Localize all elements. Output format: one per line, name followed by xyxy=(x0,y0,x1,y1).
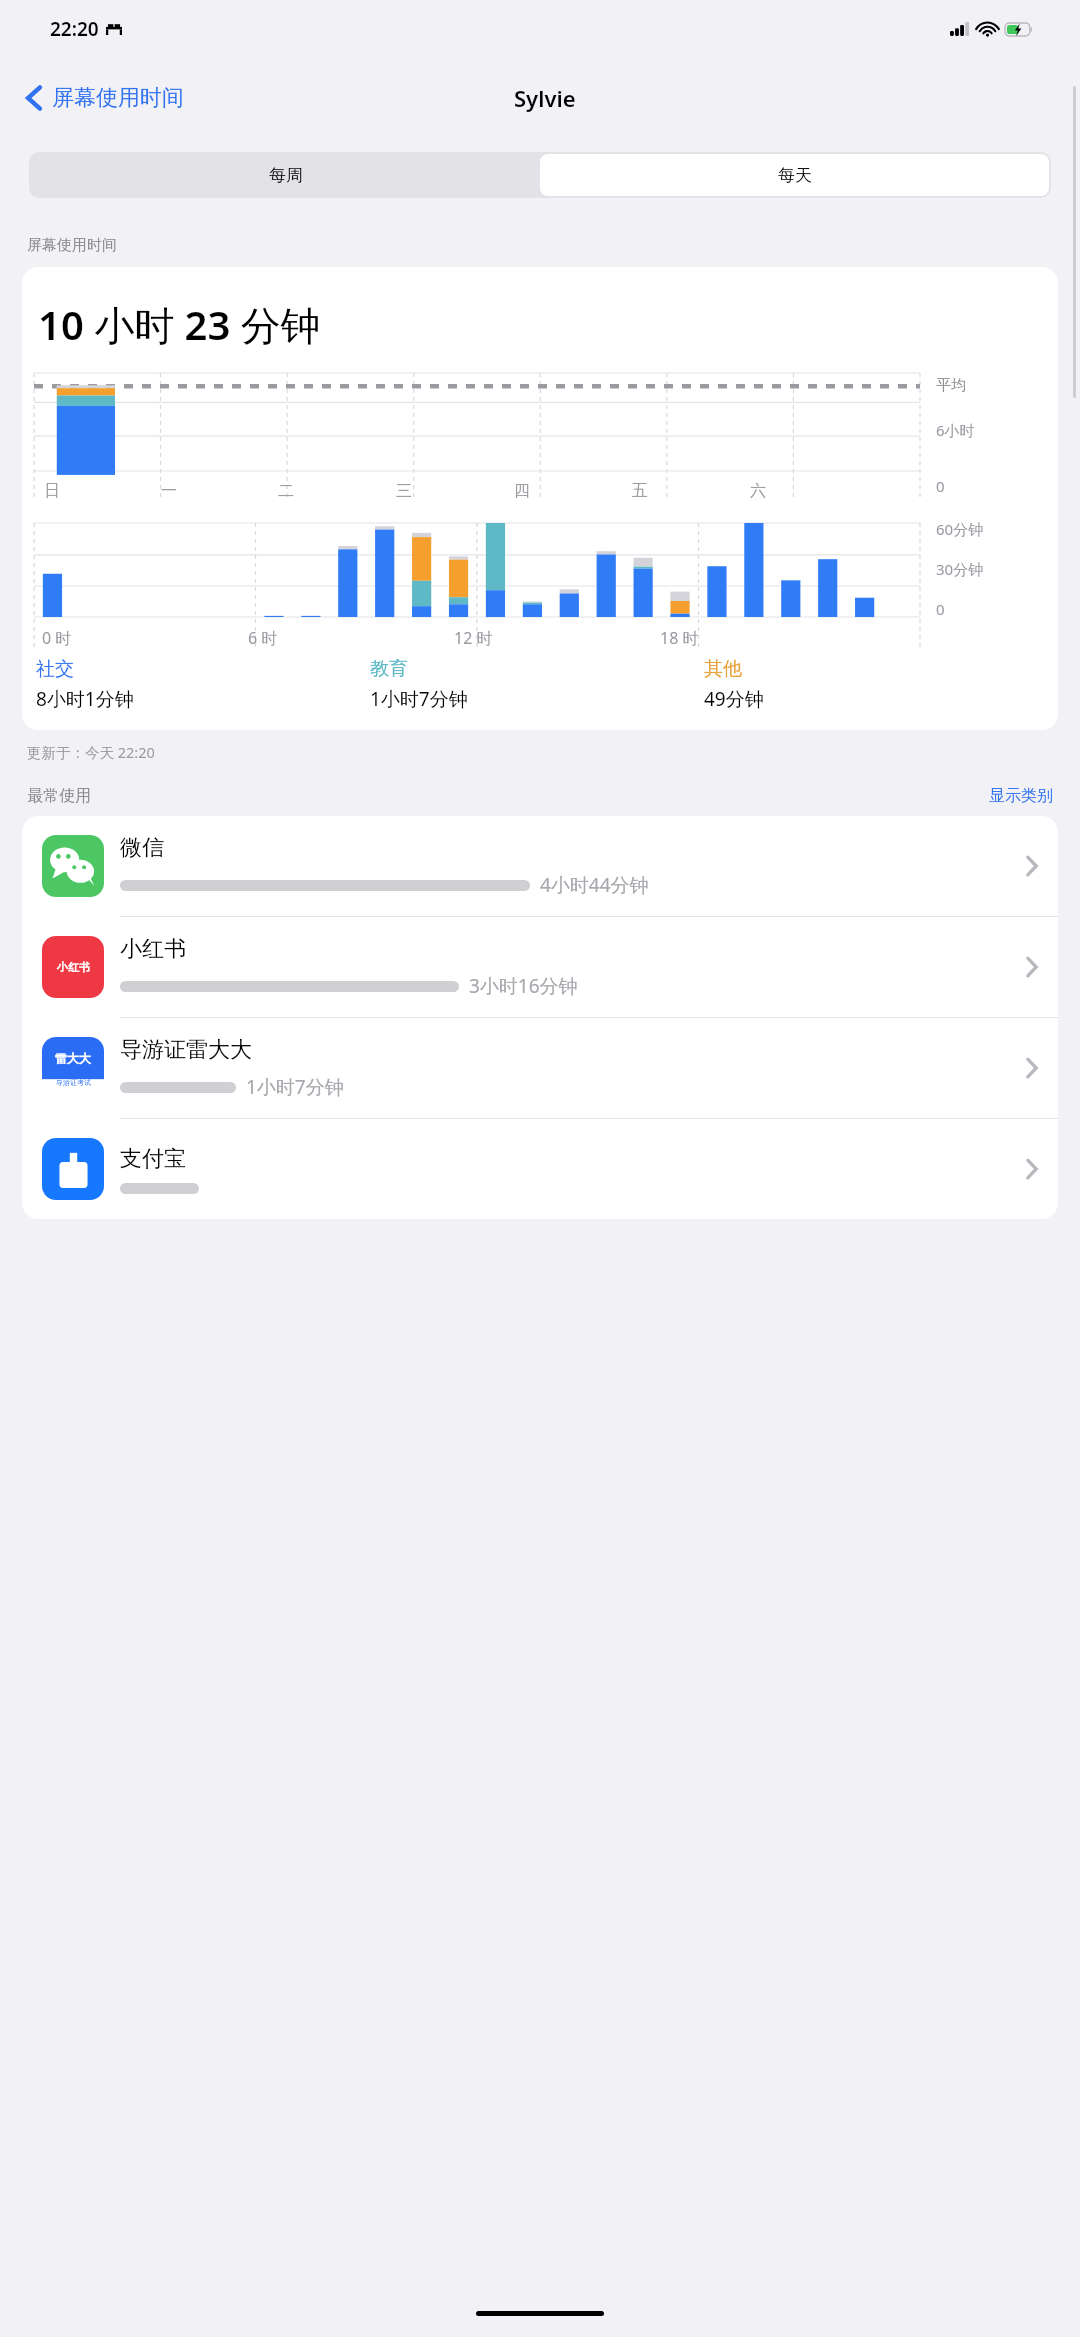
staticText: 10 小时 23 分钟 xyxy=(38,297,321,352)
staticText: 每天 xyxy=(778,165,812,186)
staticText: 0 xyxy=(936,599,945,619)
staticText: 8小时1分钟 xyxy=(36,686,134,712)
button[interactable]: 每天 xyxy=(540,154,1049,196)
staticText: 最常使用 xyxy=(27,786,91,806)
staticText: 支付宝 xyxy=(120,1145,186,1173)
staticText: Sylvie xyxy=(514,83,576,113)
button[interactable]: 每周 xyxy=(31,154,540,196)
other: Details xyxy=(1026,1158,1038,1180)
staticText: 18 时 xyxy=(660,627,699,649)
staticText: 社交 xyxy=(36,657,74,681)
button[interactable]: 雷大大 xyxy=(22,1018,1058,1118)
staticText: 导游证雷大大 xyxy=(120,1036,252,1064)
staticText: 12 时 xyxy=(454,627,493,649)
staticText: 小红书 xyxy=(57,960,90,974)
staticText: 微信 xyxy=(120,834,164,862)
button[interactable]: 显示类别 xyxy=(989,786,1053,806)
staticText: 一 xyxy=(161,481,177,501)
staticText: 四 xyxy=(514,481,530,501)
staticText: 49分钟 xyxy=(704,686,764,712)
staticText: 4小时44分钟 xyxy=(540,872,649,898)
button[interactable]: 微信 xyxy=(22,816,1058,916)
staticText: 1小时7分钟 xyxy=(370,686,468,712)
staticText: 每周 xyxy=(269,165,303,186)
staticText: 显示类别 xyxy=(989,786,1053,806)
staticText: 0 时 xyxy=(42,627,72,649)
staticText: 0 xyxy=(936,476,945,496)
button[interactable]: 支付宝 xyxy=(22,1119,1058,1219)
button[interactable]: 社交 xyxy=(36,657,370,712)
staticText: 6小时 xyxy=(936,420,975,440)
staticText: 更新于：今天 22:20 xyxy=(27,742,155,762)
button[interactable]: 小红书 xyxy=(22,917,1058,1017)
staticText: 五 xyxy=(632,481,648,501)
staticText: 小红书 xyxy=(120,935,186,963)
button[interactable]: 教育 xyxy=(370,657,704,712)
staticText: 三 xyxy=(396,481,412,501)
staticText: 日 xyxy=(44,481,60,501)
staticText: 平均 xyxy=(936,376,966,395)
other: Details xyxy=(1026,855,1038,877)
staticText: 六 xyxy=(750,481,766,501)
other: Details xyxy=(1026,1057,1038,1079)
staticText: 3小时16分钟 xyxy=(469,973,578,999)
staticText: 屏幕使用时间 xyxy=(52,84,184,112)
staticText: 雷大大 xyxy=(55,1051,91,1066)
staticText: 60分钟 xyxy=(936,519,984,539)
staticText: 屏幕使用时间 xyxy=(27,236,117,255)
staticText: 其他 xyxy=(704,657,742,681)
staticText: 6 时 xyxy=(248,627,278,649)
staticText: 22:20 xyxy=(50,16,99,42)
button[interactable]: 屏幕使用时间 xyxy=(18,78,192,118)
staticText: 教育 xyxy=(370,657,408,681)
staticText: 导游证考试 xyxy=(56,1078,91,1087)
staticText: 30分钟 xyxy=(936,559,984,579)
other: Details xyxy=(1026,956,1038,978)
button[interactable]: 其他 xyxy=(704,657,1038,712)
staticText: 二 xyxy=(278,481,294,501)
staticText: 1小时7分钟 xyxy=(246,1074,344,1100)
